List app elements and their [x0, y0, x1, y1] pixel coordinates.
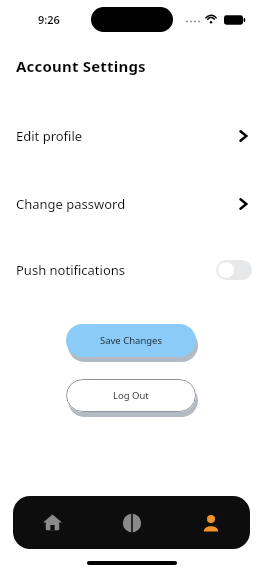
button[interactable]: Edit profile [0, 121, 264, 151]
staticText: Log Out [113, 389, 149, 402]
staticText: Save Changes [100, 334, 163, 347]
staticText: Push notifications [16, 261, 126, 279]
button[interactable]: Insights [92, 496, 171, 549]
staticText: Account Settings [16, 56, 146, 76]
button[interactable]: Change password [0, 189, 264, 219]
staticText: 9:26 [38, 12, 60, 27]
other: Push notifications toggle [216, 260, 252, 280]
button[interactable]: Home [13, 496, 92, 549]
button[interactable]: Profile [171, 496, 250, 549]
staticText: Change password [16, 195, 126, 213]
button[interactable]: Save Changes [66, 324, 196, 357]
staticText: Edit profile [16, 127, 83, 145]
button[interactable]: Push notifications [0, 254, 264, 286]
button[interactable]: Log Out [66, 379, 196, 412]
